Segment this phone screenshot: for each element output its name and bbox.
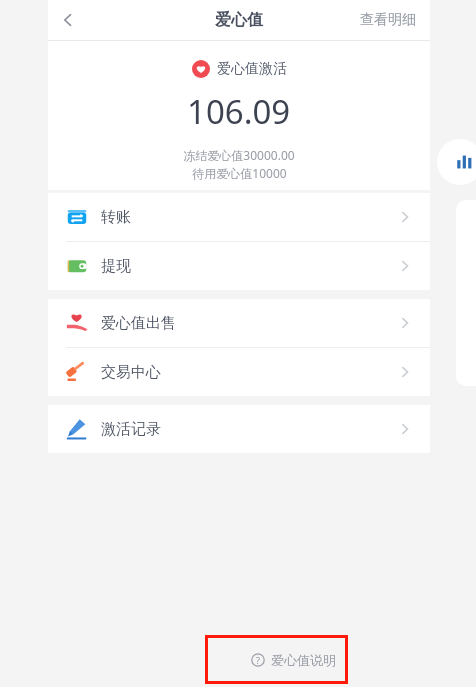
other: Withdraw	[66, 255, 88, 277]
button[interactable]: Activation records	[48, 405, 430, 453]
button[interactable]: Transfer	[48, 193, 430, 241]
staticText: 激活记录	[101, 420, 161, 439]
staticText: 爱心值说明	[271, 652, 336, 668]
staticText: ?	[256, 654, 260, 666]
button[interactable]: ?	[205, 635, 348, 684]
button[interactable]: Trading center	[48, 348, 430, 396]
other: Activation records	[66, 418, 88, 440]
staticText: 待用爱心值10000	[192, 165, 287, 181]
staticText: 爱心值激活	[217, 60, 287, 78]
button[interactable]: Sell love points	[48, 299, 430, 347]
button[interactable]: 查看明细	[346, 1, 430, 39]
staticText: 冻结爱心值30000.00	[183, 147, 295, 163]
button[interactable]: Withdraw	[48, 242, 430, 290]
staticText: 转账	[101, 208, 131, 227]
other: Transfer	[66, 206, 88, 228]
staticText: 提现	[101, 257, 131, 276]
staticText: 106.09	[187, 89, 291, 134]
other: Sell love points	[66, 312, 88, 334]
staticText: 爱心值	[215, 10, 263, 30]
button[interactable]: Back	[48, 0, 88, 40]
staticText: 查看明细	[360, 11, 416, 29]
staticText: 爱心值出售	[101, 314, 176, 333]
staticText: 交易中心	[101, 363, 161, 382]
other: Trading center	[66, 361, 88, 383]
